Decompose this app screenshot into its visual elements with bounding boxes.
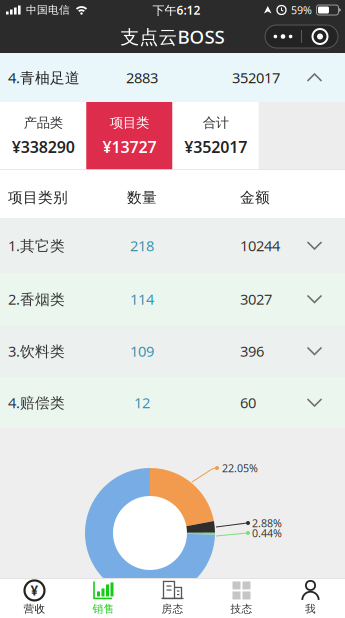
- staticText: 396: [240, 341, 264, 361]
- staticText: 项目类别: [8, 188, 68, 206]
- button[interactable]: 2.香烟类: [0, 273, 345, 325]
- button[interactable]: 销售: [69, 578, 138, 618]
- staticText: 销售: [92, 602, 114, 615]
- staticText: 59%: [291, 3, 312, 17]
- staticText: ¥352017: [184, 136, 247, 157]
- staticText: 合计: [203, 115, 229, 131]
- staticText: 2.香烟类: [8, 289, 65, 309]
- staticText: 3027: [240, 289, 272, 309]
- button[interactable]: 产品类: [0, 102, 86, 170]
- button[interactable]: 我: [276, 578, 345, 618]
- staticText: 12: [134, 393, 150, 412]
- staticText: 中国电信: [26, 3, 70, 16]
- staticText: 218: [130, 236, 154, 255]
- button[interactable]: 3.饮料类: [0, 325, 345, 377]
- button[interactable]: 4.赔偿类: [0, 377, 345, 428]
- button[interactable]: 项目类: [86, 102, 172, 170]
- button[interactable]: 技态: [207, 578, 276, 618]
- staticText: 房态: [161, 602, 183, 615]
- button[interactable]: 1.其它类: [0, 218, 345, 273]
- button[interactable]: 关闭: [302, 25, 338, 48]
- staticText: 4.青柚足道: [8, 68, 80, 87]
- staticText: 60: [240, 393, 256, 412]
- button[interactable]: 房态: [138, 578, 207, 618]
- staticText: 2.88%: [252, 516, 282, 530]
- button[interactable]: 更多: [265, 25, 301, 48]
- staticText: 2883: [126, 68, 158, 87]
- staticText: 我: [305, 602, 316, 615]
- staticText: ¥338290: [12, 136, 75, 157]
- staticText: 109: [130, 341, 154, 361]
- staticText: 114: [130, 289, 154, 309]
- staticText: 3.饮料类: [8, 341, 65, 361]
- staticText: ¥13727: [102, 136, 156, 157]
- staticText: ¥: [30, 582, 38, 599]
- staticText: 营收: [23, 602, 45, 615]
- staticText: 1.其它类: [8, 236, 65, 255]
- staticText: 0.44%: [252, 526, 282, 540]
- button[interactable]: 合计: [172, 102, 259, 170]
- button[interactable]: ¥: [0, 578, 69, 618]
- staticText: 10244: [240, 236, 280, 255]
- staticText: 数量: [127, 188, 157, 206]
- staticText: 项目类: [110, 115, 149, 131]
- staticText: 352017: [232, 68, 280, 87]
- staticText: 产品类: [24, 115, 63, 131]
- staticText: 技态: [230, 602, 252, 615]
- button[interactable]: 4.青柚足道: [0, 53, 345, 102]
- staticText: 22.05%: [222, 461, 258, 475]
- staticText: 4.赔偿类: [8, 393, 65, 412]
- staticText: 下午6:12: [152, 2, 200, 18]
- staticText: 金额: [240, 188, 270, 206]
- staticText: 支点云BOSS: [120, 24, 224, 49]
